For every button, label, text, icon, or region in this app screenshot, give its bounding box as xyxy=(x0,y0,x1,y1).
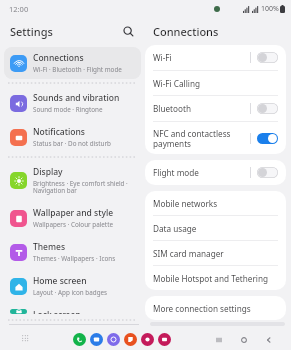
staticText: Lock screen xyxy=(33,309,81,314)
button[interactable]: Sounds and vibration xyxy=(4,87,141,119)
button[interactable]: Mobile Hotspot and Tethering xyxy=(145,266,286,290)
button[interactable]: Search xyxy=(119,22,137,40)
button[interactable]: net xyxy=(107,333,120,346)
button[interactable]: msg xyxy=(90,333,103,346)
button[interactable]: phone xyxy=(73,333,86,346)
button[interactable]: back xyxy=(262,333,275,346)
staticText: Sounds and vibration xyxy=(33,92,120,104)
button[interactable]: cam xyxy=(141,333,154,346)
staticText: More connection settings xyxy=(153,303,251,314)
button[interactable]: Mobile networks xyxy=(145,191,286,215)
staticText: Flight mode xyxy=(153,167,246,178)
staticText: Connections xyxy=(33,52,84,64)
button[interactable]: More connection settings xyxy=(145,296,286,320)
staticText: Display xyxy=(33,166,63,178)
button[interactable] xyxy=(257,52,278,63)
staticText: Bluetooth xyxy=(153,103,246,114)
staticText: Mobile networks xyxy=(153,198,218,209)
button[interactable]: Display xyxy=(4,161,141,200)
staticText: 100% xyxy=(261,4,279,14)
staticText: Mobile Hotspot and Tethering xyxy=(153,273,268,284)
button[interactable]: Wallpaper and style xyxy=(4,202,141,234)
button[interactable]: Flight mode xyxy=(145,160,286,185)
staticText: Data usage xyxy=(153,223,197,234)
staticText: Wallpaper and style xyxy=(33,207,114,219)
button[interactable]: store xyxy=(124,333,137,346)
button[interactable]: Themes xyxy=(4,236,141,268)
button[interactable]: Notifications xyxy=(4,121,141,153)
button[interactable]: Lock screen xyxy=(4,304,141,319)
staticText: Sound mode · Ringtone xyxy=(33,105,103,114)
button[interactable] xyxy=(257,103,278,114)
button[interactable]: Wi-Fi Calling xyxy=(145,71,286,95)
button[interactable]: Data usage xyxy=(145,216,286,240)
button[interactable]: gal xyxy=(158,333,171,346)
button[interactable]: Bluetooth xyxy=(145,96,286,121)
button[interactable]: recents xyxy=(212,333,225,346)
staticText: Wallpapers · Colour palette xyxy=(33,220,113,229)
staticText: Settings xyxy=(10,24,53,39)
staticText: Brightness · Eye comfort shield · Naviga… xyxy=(33,179,135,195)
staticText: Connections xyxy=(153,24,219,39)
button[interactable]: home xyxy=(237,333,250,346)
button[interactable]: Connections xyxy=(4,47,141,79)
staticText: Wi-Fi · Bluetooth · Flight mode xyxy=(33,65,122,74)
button[interactable] xyxy=(257,167,278,178)
staticText: Wi-Fi Calling xyxy=(153,78,201,89)
staticText: SIM card manager xyxy=(153,248,224,259)
staticText: Notifications xyxy=(33,126,85,138)
button[interactable]: Apps xyxy=(20,333,32,345)
button[interactable]: SIM card manager xyxy=(145,241,286,265)
staticText: Layout · App icon badges xyxy=(33,288,108,297)
staticText: Themes xyxy=(33,241,66,253)
button[interactable]: Home screen xyxy=(4,270,141,302)
button[interactable]: NFC and contactless payments xyxy=(145,122,286,154)
staticText: Wi-Fi xyxy=(153,52,246,63)
button[interactable]: Wi-Fi xyxy=(145,45,286,70)
staticText: Status bar · Do not disturb xyxy=(33,139,111,148)
staticText: NFC and contactless payments xyxy=(153,128,246,149)
staticText: Home screen xyxy=(33,275,87,287)
button[interactable] xyxy=(257,133,278,144)
staticText: 12:00 xyxy=(9,4,29,14)
staticText: Themes · Wallpapers · Icons xyxy=(33,254,116,263)
